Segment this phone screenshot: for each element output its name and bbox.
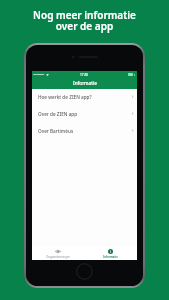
staticText: 17:30 [80, 73, 89, 77]
other: Informatie [108, 249, 113, 254]
staticText: Informatie [73, 80, 97, 86]
staticText: Over de ZIEN app [38, 111, 131, 117]
staticText: Aanbieden [33, 73, 45, 76]
staticText: Oogaandoeningen [46, 255, 70, 259]
button[interactable]: Hoe werkt de ZIEN app? [32, 89, 137, 106]
button[interactable]: Oogaandoeningen [32, 247, 84, 259]
button[interactable]: Over de ZIEN app [32, 106, 137, 123]
staticText: Hoe werkt de ZIEN app? [38, 94, 131, 100]
staticText: Nog meer informatie over de app [0, 8, 169, 33]
button[interactable]: Informatie [84, 247, 137, 259]
button[interactable]: Over Bartiméus [32, 123, 137, 140]
other: Oogaandoeningen [55, 249, 61, 254]
staticText: Over Bartiméus [38, 128, 131, 134]
staticText: Informatie [103, 255, 118, 259]
